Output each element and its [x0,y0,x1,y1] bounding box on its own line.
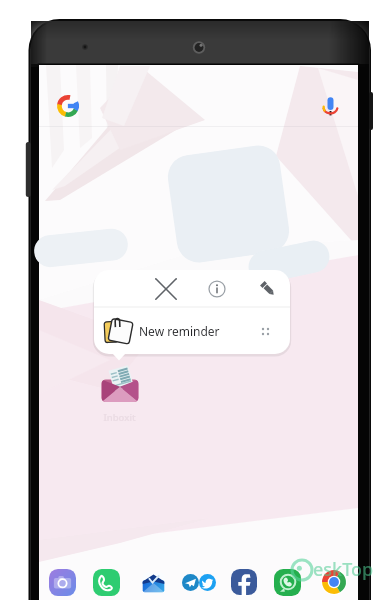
button[interactable]: Remove [149,272,183,306]
button[interactable]: Inboxit [88,367,151,424]
button[interactable]: WhatsApp [274,569,301,596]
button[interactable]: Google Search [57,95,79,117]
button[interactable]: Chrome [321,569,347,595]
button[interactable]: Camera [49,569,76,596]
button[interactable]: Edit [251,272,285,306]
button[interactable]: Facebook [231,569,257,595]
button[interactable]: Email [140,569,167,596]
button[interactable]: New reminder [94,308,290,354]
button[interactable]: Voice search [319,94,342,117]
button[interactable]: Telegram [182,574,199,591]
staticText: eskTop [313,557,374,582]
button[interactable]: Phone [93,569,120,596]
staticText: New reminder [139,323,220,339]
button[interactable]: App info [200,272,234,306]
button[interactable]: Twitter [199,574,216,591]
staticText: Inboxit [103,411,136,424]
